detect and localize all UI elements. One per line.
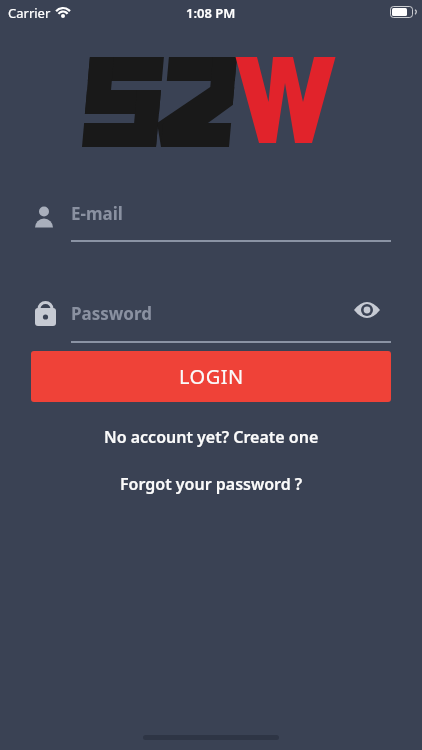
button[interactable] xyxy=(354,301,380,319)
button[interactable]: LOGIN xyxy=(31,351,391,402)
staticText: Carrier xyxy=(8,4,51,22)
button[interactable]: No account yet? Create one xyxy=(104,426,319,448)
staticText: Password xyxy=(71,302,152,325)
button[interactable]: Forgot your password ? xyxy=(120,473,303,495)
staticText: E-mail xyxy=(71,202,123,225)
staticText: 1:08 PM xyxy=(186,4,236,22)
button[interactable]: E-mail xyxy=(30,198,392,244)
button[interactable]: Password xyxy=(30,298,392,344)
staticText: LOGIN xyxy=(179,363,244,390)
